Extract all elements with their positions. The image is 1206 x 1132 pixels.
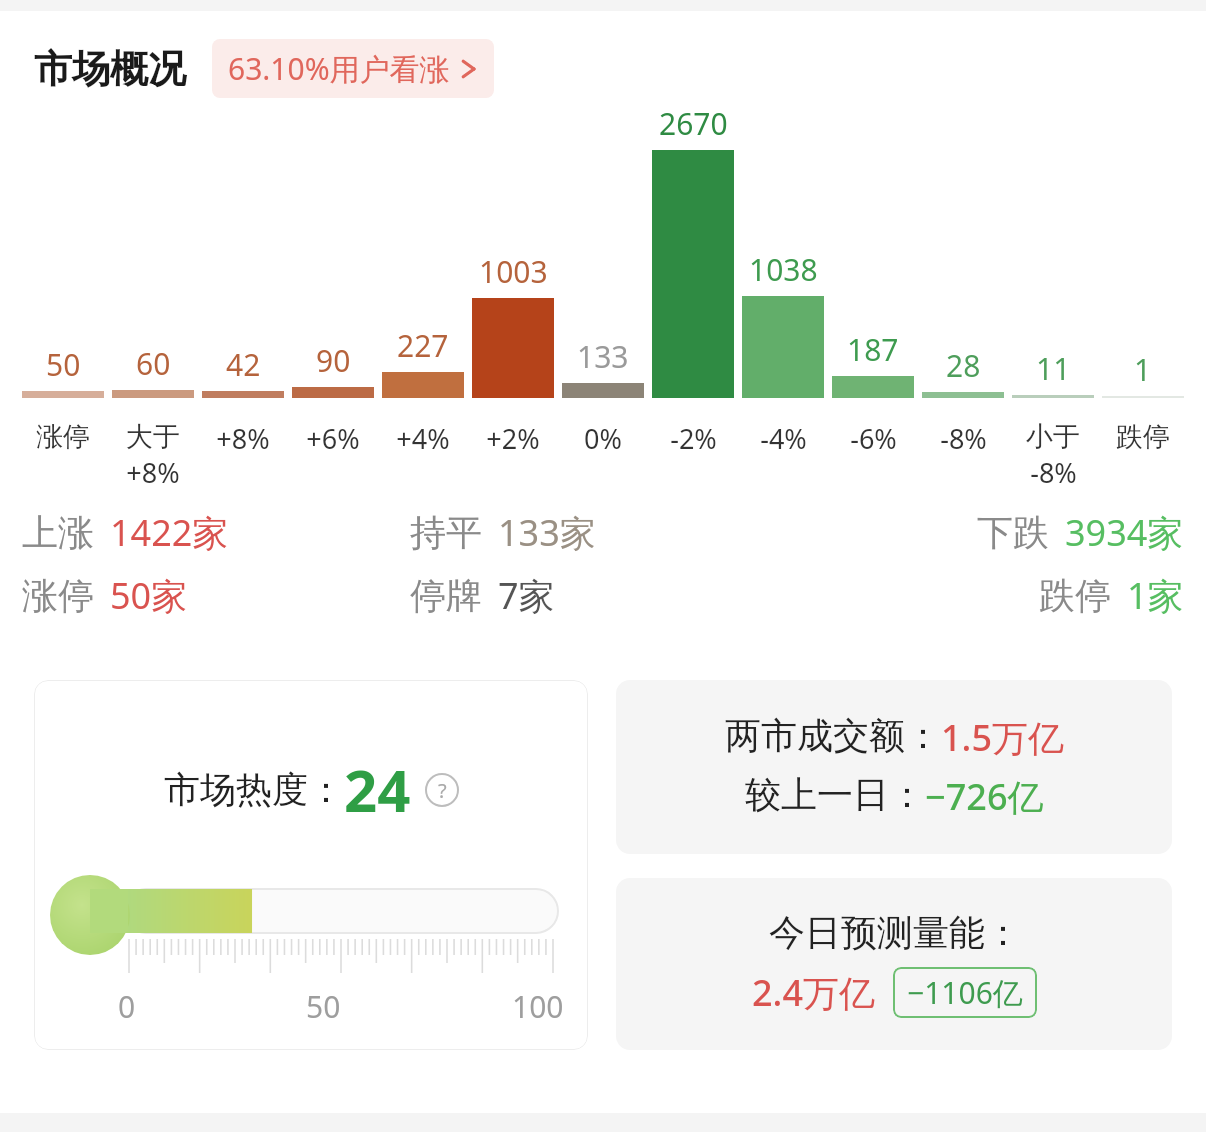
staticText: 60 <box>136 343 171 384</box>
staticText: 涨停 <box>22 573 94 618</box>
staticText: 42 <box>226 344 261 385</box>
staticText: 0% <box>584 420 622 457</box>
staticText: 50 <box>46 344 81 385</box>
staticText: 0 <box>118 986 136 1027</box>
staticText: 1422家 <box>110 508 229 557</box>
staticText: 227 <box>397 325 449 366</box>
staticText: 1 <box>1134 349 1152 390</box>
staticText: 50家 <box>110 571 188 620</box>
button[interactable]: 下跌 <box>797 508 1184 557</box>
staticText: 3934家 <box>1065 508 1184 557</box>
staticText: 1038 <box>749 249 818 290</box>
staticText: 63.10%用户看涨 <box>228 48 450 89</box>
button[interactable]: 两市成交额： <box>616 680 1172 854</box>
staticText: 涨停 <box>36 420 90 454</box>
button[interactable]: 持平 <box>410 508 797 557</box>
button[interactable]: 今日预测量能： <box>616 878 1172 1050</box>
staticText: 100 <box>512 986 564 1027</box>
staticText: -8% <box>1030 454 1077 491</box>
staticText: +8% <box>216 420 270 457</box>
staticText: 11 <box>1036 348 1071 389</box>
staticText: 跌停 <box>1039 573 1111 618</box>
staticText: 1003 <box>479 251 548 292</box>
staticText: 2670 <box>659 103 728 144</box>
staticText: 两市成交额： <box>725 713 941 758</box>
staticText: 28 <box>946 345 981 386</box>
staticText: 24 <box>344 750 411 829</box>
staticText: -8% <box>940 420 987 457</box>
staticText: 下跌 <box>977 510 1049 555</box>
staticText: −726亿 <box>925 772 1044 821</box>
staticText: 较上一日： <box>745 772 925 817</box>
staticText: 今日预测量能： <box>769 910 1021 955</box>
staticText: 7家 <box>498 571 555 620</box>
button[interactable]: 跌停 <box>797 571 1184 620</box>
staticText: 2.4万亿 <box>752 968 875 1017</box>
staticText: 90 <box>316 340 351 381</box>
staticText: -4% <box>760 420 807 457</box>
staticText: −1106亿 <box>907 972 1023 1013</box>
staticText: +8% <box>126 454 180 491</box>
staticText: 上涨 <box>22 510 94 555</box>
button[interactable]: 涨停 <box>22 571 410 620</box>
staticText: 市场热度： <box>164 767 344 812</box>
staticText: 1家 <box>1127 571 1184 620</box>
button[interactable]: Help <box>425 773 459 807</box>
staticText: ? <box>438 777 447 804</box>
button[interactable]: 上涨 <box>22 508 410 557</box>
button[interactable]: 停牌 <box>410 571 797 620</box>
staticText: -6% <box>850 420 897 457</box>
staticText: 小于 <box>1026 420 1080 454</box>
staticText: 50 <box>306 986 341 1027</box>
staticText: 133家 <box>498 508 596 557</box>
staticText: 跌停 <box>1116 420 1170 454</box>
staticText: +2% <box>486 420 540 457</box>
staticText: 停牌 <box>410 573 482 618</box>
staticText: 大于 <box>126 420 180 454</box>
staticText: 133 <box>577 336 629 377</box>
staticText: +4% <box>396 420 450 457</box>
staticText: 187 <box>847 329 899 370</box>
staticText: -2% <box>670 420 717 457</box>
button[interactable]: 63.10%用户看涨 <box>212 39 494 98</box>
staticText: +6% <box>306 420 360 457</box>
button[interactable]: 市场热度： <box>34 680 588 1050</box>
staticText: 持平 <box>410 510 482 555</box>
staticText: 1.5万亿 <box>941 713 1064 762</box>
staticText: 市场概况 <box>34 45 186 93</box>
